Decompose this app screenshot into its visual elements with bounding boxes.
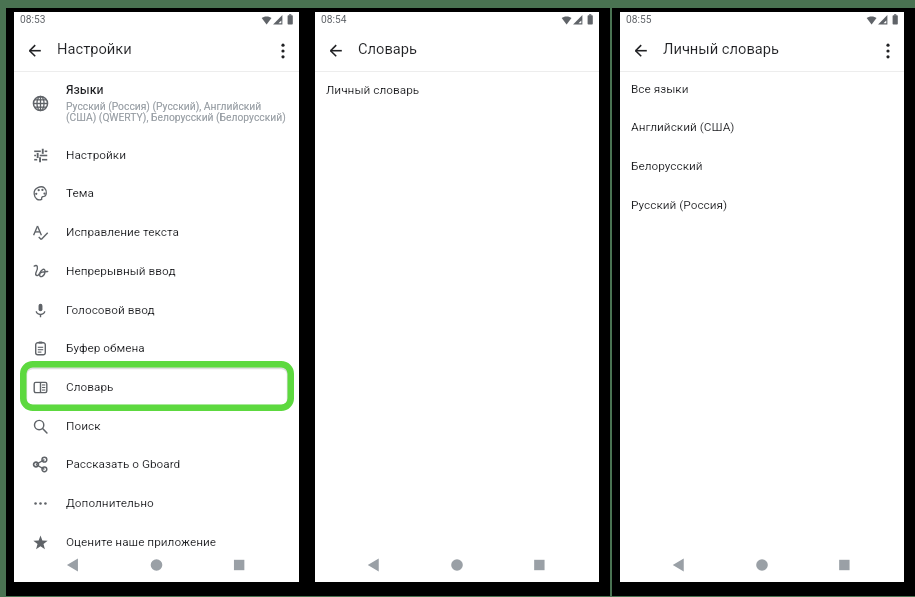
staticText: Поиск — [66, 419, 101, 433]
button[interactable]: Непрерывный ввод — [14, 252, 299, 291]
button[interactable]: Back — [29, 36, 59, 66]
button[interactable]: Настройки — [14, 136, 299, 175]
button[interactable]: Все языки — [620, 70, 904, 109]
button[interactable]: Белорусский — [620, 147, 904, 186]
button[interactable]: Back — [330, 36, 360, 66]
button[interactable]: Английский (США) — [620, 108, 904, 147]
staticText: Дополнительно — [66, 496, 154, 510]
staticText: Русский (Россия) (Русский), Английский — [66, 100, 262, 112]
staticText: Все языки — [631, 82, 689, 96]
staticText: Словарь — [358, 40, 418, 57]
button[interactable]: Оцените наше приложение — [14, 523, 299, 562]
button[interactable] — [14, 88, 299, 138]
staticText: Английский (США) — [631, 120, 735, 134]
staticText: Непрерывный ввод — [66, 264, 176, 278]
button[interactable]: Поиск — [14, 407, 299, 446]
button[interactable]: More options — [877, 36, 907, 66]
staticText: Личный словарь — [326, 83, 420, 97]
button[interactable]: Рассказать о Gboard — [14, 445, 299, 484]
staticText: Русский (Россия) — [631, 198, 728, 212]
staticText: Белорусский — [631, 159, 703, 173]
button[interactable]: Личный словарь — [315, 71, 599, 110]
staticText: Настройки — [66, 148, 127, 162]
button[interactable]: Тема — [14, 174, 299, 213]
staticText: Буфер обмена — [66, 341, 145, 355]
button[interactable]: More options — [272, 36, 302, 66]
staticText: Исправление текста — [66, 225, 179, 239]
button[interactable]: Словарь — [14, 368, 299, 407]
staticText: Рассказать о Gboard — [66, 457, 181, 471]
button[interactable]: Голосовой ввод — [14, 291, 299, 330]
button[interactable]: Русский (Россия) — [620, 186, 904, 225]
button[interactable]: Дополнительно — [14, 484, 299, 523]
staticText: Настройки — [57, 40, 132, 57]
staticText: Оцените наше приложение — [66, 535, 217, 549]
staticText: (США) (QWERTY), Белорусский (Белорусский… — [66, 111, 286, 123]
staticText: 08:55 — [626, 14, 652, 26]
staticText: Тема — [66, 186, 94, 200]
staticText: Голосовой ввод — [66, 303, 155, 317]
button[interactable]: Back — [635, 36, 665, 66]
staticText: Словарь — [66, 380, 114, 394]
staticText: 08:53 — [20, 14, 46, 26]
staticText: 08:54 — [321, 14, 347, 26]
staticText: Личный словарь — [663, 40, 780, 57]
button[interactable]: Исправление текста — [14, 213, 299, 252]
button[interactable]: Буфер обмена — [14, 329, 299, 368]
staticText: Языки — [66, 83, 104, 97]
